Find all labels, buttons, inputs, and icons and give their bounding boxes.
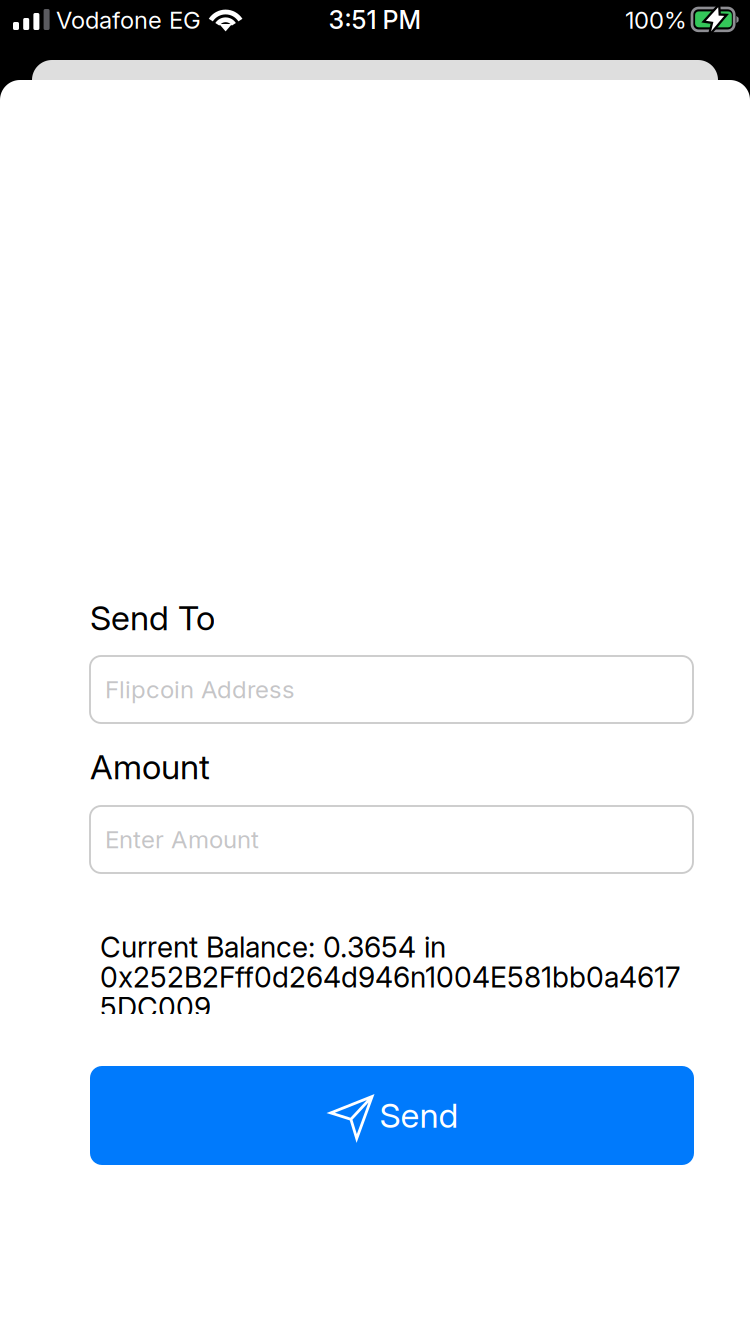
staticText: Send To xyxy=(90,598,215,638)
button[interactable]: Enter Amount xyxy=(90,806,693,873)
staticText: 100% xyxy=(625,6,687,34)
button[interactable]: Flipcoin Address xyxy=(90,656,693,723)
staticText: Current Balance: 0.3654 in 0x252B2Fff0d2… xyxy=(100,932,680,1022)
button[interactable]: Send xyxy=(90,1066,694,1165)
staticText: Vodafone EG xyxy=(56,6,201,34)
staticText: Enter Amount xyxy=(105,826,259,853)
staticText: 3:51 PM xyxy=(328,6,421,34)
staticText: Send xyxy=(379,1096,458,1135)
staticText: Amount xyxy=(90,747,210,787)
staticText: Flipcoin Address xyxy=(105,676,295,703)
